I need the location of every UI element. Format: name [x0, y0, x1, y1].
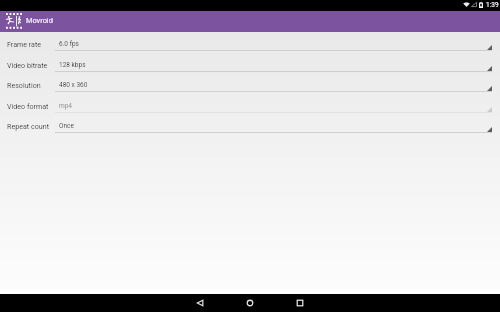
button[interactable]: Recent apps	[275, 294, 325, 312]
staticText: Once	[59, 122, 74, 130]
staticText: 1:39	[486, 1, 499, 9]
staticText: 480 x 360	[59, 81, 88, 89]
button[interactable]: Resolution	[0, 72, 500, 93]
staticText: Movroid	[26, 16, 53, 25]
staticText: 6.0 fps	[59, 40, 79, 48]
staticText: mp4	[59, 102, 73, 110]
button[interactable]: Video format	[0, 93, 500, 114]
button[interactable]: Frame rate	[0, 31, 500, 52]
staticText: Video bitrate	[7, 61, 48, 69]
staticText: Frame rate	[7, 40, 42, 48]
button[interactable]: Repeat count	[0, 113, 500, 134]
button[interactable]: Home	[225, 294, 275, 312]
button[interactable]: Video bitrate	[0, 52, 500, 73]
button[interactable]: Back	[175, 294, 225, 312]
staticText: Resolution	[7, 81, 41, 89]
other: Movroid logo	[6, 13, 22, 29]
staticText: Video format	[7, 102, 49, 110]
staticText: Repeat count	[7, 122, 49, 130]
staticText: 128 kbps	[59, 61, 86, 69]
